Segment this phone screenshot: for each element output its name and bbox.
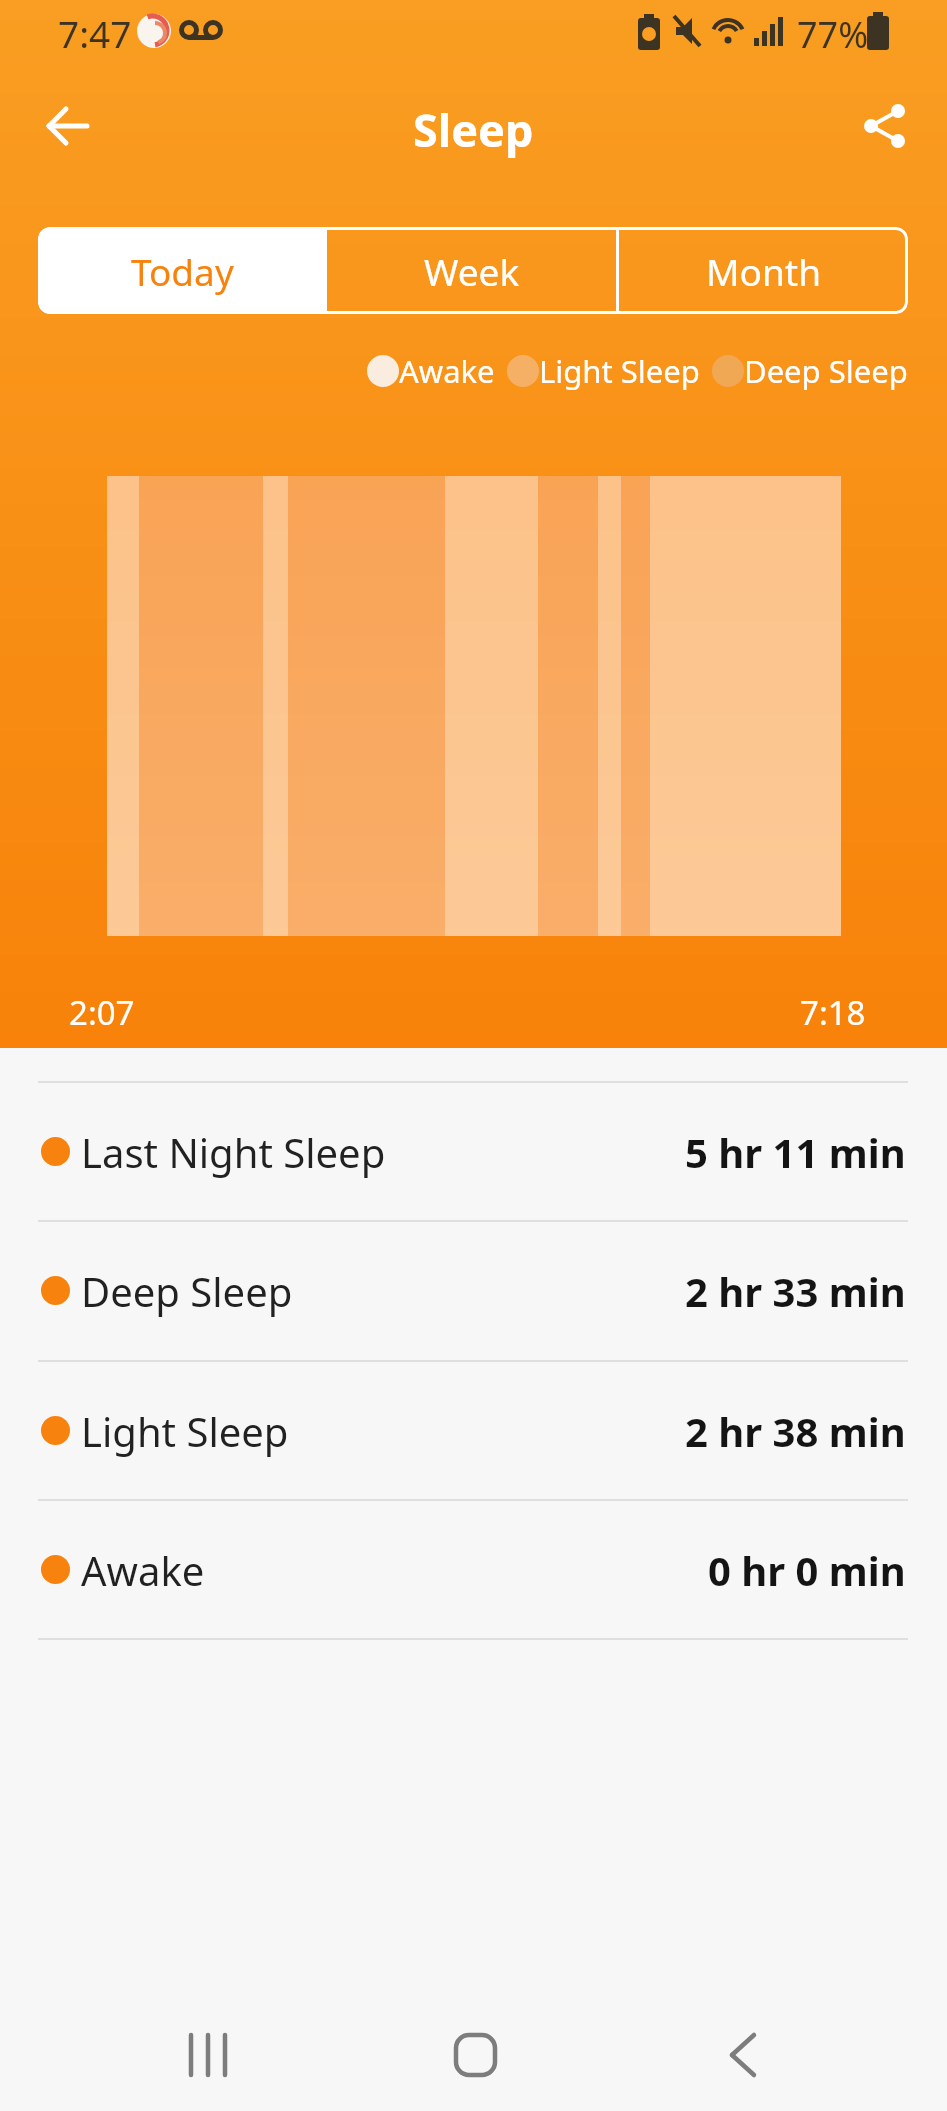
staticText: 2 hr 33 min — [685, 1264, 906, 1318]
staticText: Light Sleep — [539, 350, 700, 392]
staticText: Month — [706, 246, 822, 296]
button[interactable] — [454, 2033, 497, 2077]
button[interactable]: Last Night Sleep — [41, 1083, 906, 1220]
staticText: Last Night Sleep — [81, 1125, 386, 1179]
button[interactable]: Today — [38, 227, 327, 314]
staticText: 5 hr 11 min — [685, 1125, 906, 1179]
staticText: Deep Sleep — [744, 350, 908, 392]
staticText: 7:18 — [800, 990, 866, 1035]
button[interactable]: Light Sleep — [41, 1362, 906, 1499]
button[interactable]: Awake — [41, 1501, 906, 1638]
staticText: 7:47 — [58, 8, 132, 58]
staticText: 2:07 — [69, 990, 135, 1035]
button[interactable] — [188, 2033, 234, 2077]
button[interactable]: Deep Sleep — [41, 1222, 906, 1359]
staticText: Sleep — [413, 99, 534, 160]
button[interactable]: Week — [327, 227, 616, 314]
staticText: 77% — [797, 10, 869, 59]
staticText: 0 hr 0 min — [708, 1543, 906, 1597]
staticText: Week — [424, 246, 520, 296]
staticText: Awake — [399, 350, 495, 392]
staticText: 2 hr 38 min — [685, 1404, 906, 1458]
staticText: Awake — [81, 1543, 205, 1597]
staticText: Light Sleep — [81, 1404, 289, 1458]
button[interactable] — [862, 103, 908, 149]
button[interactable] — [726, 2033, 760, 2077]
staticText: Deep Sleep — [81, 1264, 293, 1318]
staticText: Today — [131, 246, 234, 296]
button[interactable]: Month — [619, 227, 908, 314]
button[interactable] — [46, 104, 90, 148]
